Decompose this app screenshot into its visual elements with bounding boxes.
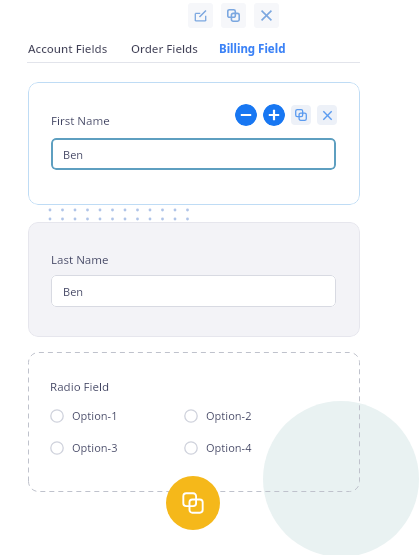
staticText: Account Fields	[28, 41, 108, 57]
button[interactable]: Option-3	[46, 436, 122, 459]
button[interactable]: Remove field	[235, 104, 257, 126]
button[interactable]: First Name	[28, 82, 360, 205]
staticText: Last Name	[51, 252, 109, 268]
button[interactable]: Add field	[263, 104, 285, 126]
button[interactable]: Ben	[51, 138, 336, 170]
button[interactable]: Edit	[188, 3, 213, 28]
staticText: Order Fields	[131, 41, 198, 57]
staticText: Option-3	[72, 440, 118, 455]
button[interactable]: Last Name	[28, 222, 360, 337]
staticText: Billing Field	[219, 41, 286, 57]
button[interactable]: Option-2	[180, 404, 256, 427]
button[interactable]: Radio Field	[28, 352, 360, 492]
button[interactable]: Option-1	[46, 404, 122, 427]
staticText: Option-2	[206, 408, 252, 423]
staticText: Radio Field	[50, 379, 110, 395]
button[interactable]: Ben	[51, 275, 336, 307]
button[interactable]: Close	[254, 3, 279, 28]
button[interactable]: Option-4	[180, 436, 256, 459]
staticText: First Name	[51, 113, 110, 129]
staticText: Ben	[63, 147, 84, 162]
staticText: Option-1	[72, 408, 118, 423]
button[interactable]: Duplicate	[166, 476, 220, 530]
button[interactable]: Copy	[221, 3, 246, 28]
staticText: Ben	[63, 284, 84, 299]
button[interactable]: Delete field	[317, 105, 337, 125]
staticText: Option-4	[206, 440, 252, 455]
button[interactable]: Order Fields	[130, 38, 199, 60]
button[interactable]: Account Fields	[27, 38, 109, 60]
button[interactable]: Duplicate field	[291, 105, 311, 125]
button[interactable]: Billing Field	[218, 38, 287, 60]
